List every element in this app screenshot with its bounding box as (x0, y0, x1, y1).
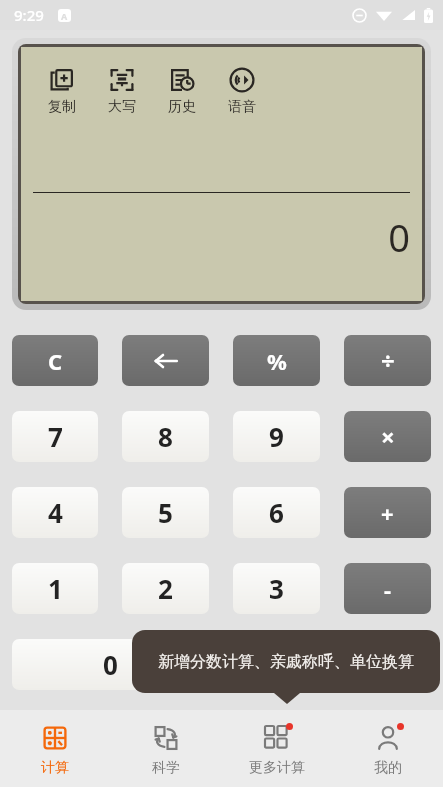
button[interactable]: 3 (233, 563, 320, 614)
staticText: 5 (158, 495, 173, 530)
staticText: 复制 (48, 98, 76, 116)
button[interactable]: 1 (12, 563, 98, 614)
staticText: 9 (269, 419, 284, 454)
staticText: 0 (33, 211, 410, 263)
staticText: 新增分数计算、亲戚称呼、单位换算 (158, 652, 414, 672)
staticText: 历史 (168, 98, 196, 116)
button[interactable]: - (344, 563, 431, 614)
staticText: 1 (48, 571, 63, 606)
button[interactable]: 计算 (0, 710, 110, 787)
staticText: 大写 (108, 98, 136, 116)
button[interactable]: 语音 (225, 63, 259, 118)
staticText: + (381, 498, 394, 528)
staticText: 6 (269, 495, 284, 530)
button[interactable]: 6 (233, 487, 320, 538)
staticText: 语音 (228, 98, 256, 116)
staticText: 2 (158, 571, 173, 606)
button[interactable]: 2 (122, 563, 209, 614)
button[interactable]: 历史 (165, 63, 199, 118)
button[interactable]: + (344, 487, 431, 538)
button[interactable]: 更多计算 (221, 710, 332, 787)
button[interactable]: Backspace (122, 335, 209, 386)
button[interactable]: . (233, 639, 320, 690)
staticText: C (48, 346, 63, 376)
button[interactable]: 科学 (110, 710, 221, 787)
button[interactable]: 复制 (45, 63, 79, 118)
button[interactable]: ÷ (344, 335, 431, 386)
staticText: 4 (48, 495, 63, 530)
staticText: 7 (48, 419, 63, 454)
button[interactable]: × (344, 411, 431, 462)
staticText: ÷ (381, 344, 395, 377)
staticText: 科学 (152, 759, 180, 777)
button[interactable]: 新增分数计算、亲戚称呼、单位换算 (132, 630, 440, 693)
staticText: 9:29 (14, 5, 44, 25)
button[interactable]: 7 (12, 411, 98, 462)
staticText: 8 (158, 419, 173, 454)
staticText: 我的 (374, 759, 402, 777)
button[interactable]: 9 (233, 411, 320, 462)
staticText: 计算 (41, 759, 69, 777)
staticText: % (267, 346, 287, 376)
button[interactable]: 5 (122, 487, 209, 538)
staticText: × (381, 420, 395, 453)
button[interactable]: % (233, 335, 320, 386)
staticText: - (384, 574, 392, 604)
button[interactable]: C (12, 335, 98, 386)
button[interactable]: 大写 (105, 63, 139, 118)
staticText: A (61, 10, 68, 22)
button[interactable]: = (344, 639, 431, 690)
staticText: 3 (269, 571, 284, 606)
button[interactable]: 0 (12, 639, 209, 690)
staticText: . (273, 647, 281, 682)
button[interactable]: 8 (122, 411, 209, 462)
button[interactable]: 我的 (332, 710, 443, 787)
staticText: = (381, 650, 394, 680)
staticText: 更多计算 (249, 759, 305, 777)
staticText: 0 (103, 647, 118, 682)
button[interactable]: 4 (12, 487, 98, 538)
